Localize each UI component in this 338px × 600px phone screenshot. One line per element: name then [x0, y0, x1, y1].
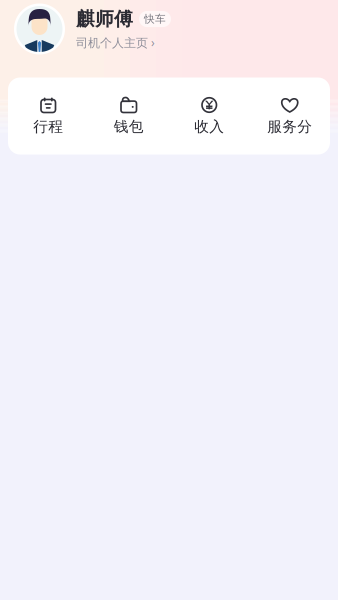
- staticText: 行程: [33, 117, 63, 135]
- button[interactable]: 行程: [8, 97, 88, 135]
- staticText: 麒师傅: [76, 8, 133, 30]
- staticText: 服务分: [267, 117, 312, 135]
- button[interactable]: 收入: [169, 97, 249, 135]
- staticText: 司机个人主页 ›: [76, 34, 155, 50]
- staticText: 钱包: [114, 117, 144, 135]
- staticText: 收入: [194, 117, 224, 135]
- staticText: 快车: [144, 12, 166, 26]
- button[interactable]: 钱包: [88, 97, 169, 135]
- button[interactable]: 麒师傅: [0, 0, 338, 54]
- button[interactable]: 服务分: [249, 97, 330, 135]
